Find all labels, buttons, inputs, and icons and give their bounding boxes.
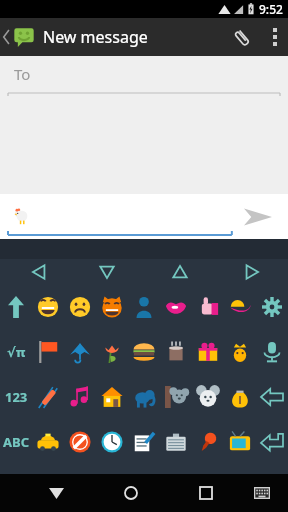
button[interactable]: Koala (160, 374, 192, 419)
button[interactable]: Tulip (96, 329, 128, 374)
button[interactable]: Emoji (10, 205, 34, 229)
button[interactable] (0, 18, 37, 56)
button[interactable]: Send (236, 195, 280, 239)
button[interactable]: TV (224, 419, 256, 464)
staticText: To (14, 64, 31, 84)
button[interactable]: Switch keyboard (242, 474, 282, 512)
staticText: ABC (3, 433, 29, 451)
button[interactable]: Settings (256, 284, 288, 329)
button[interactable]: Memo (128, 419, 160, 464)
staticText: √π (7, 343, 26, 361)
button[interactable]: House (96, 374, 128, 419)
button[interactable]: Money (224, 374, 256, 419)
button[interactable]: Recents (183, 474, 229, 512)
button[interactable]: Flag (32, 329, 64, 374)
button[interactable]: Thumbs up (192, 284, 224, 329)
button[interactable]: Backspace (256, 374, 288, 419)
button[interactable]: Cat (96, 284, 128, 329)
button[interactable]: Grinning (32, 284, 64, 329)
button[interactable]: Microphone (256, 329, 288, 374)
button[interactable]: Symbols (0, 329, 32, 374)
button[interactable]: Numbers (0, 374, 32, 419)
button[interactable]: Hide keyboard (33, 474, 79, 512)
button[interactable]: Umbrella (64, 329, 96, 374)
button[interactable]: Mouse (192, 374, 224, 419)
button[interactable]: Ride (32, 374, 64, 419)
button[interactable]: Gift (192, 329, 224, 374)
button[interactable]: Scroll up (164, 259, 196, 284)
staticText: 123 (5, 388, 28, 406)
button[interactable]: Attach (222, 18, 262, 56)
button[interactable]: Coffee (160, 329, 192, 374)
button[interactable]: Next page (236, 259, 268, 284)
button[interactable]: Scroll down (91, 259, 123, 284)
button[interactable]: Person (128, 284, 160, 329)
staticText: New message (43, 26, 148, 48)
button[interactable]: Home (108, 474, 154, 512)
button[interactable]: Sad (64, 284, 96, 329)
button[interactable]: Previous page (23, 259, 55, 284)
button[interactable]: Elephant (128, 374, 160, 419)
button[interactable]: Music (64, 374, 96, 419)
button[interactable]: Clock (96, 419, 128, 464)
button[interactable]: Pin (192, 419, 224, 464)
button[interactable]: Briefcase (160, 419, 192, 464)
button[interactable]: Crown (224, 329, 256, 374)
button[interactable]: More options (262, 18, 288, 56)
button[interactable]: Shift (0, 284, 32, 329)
button[interactable]: Letters (0, 419, 32, 464)
button[interactable]: No entry (64, 419, 96, 464)
staticText: 9:52 (259, 1, 283, 17)
button[interactable]: Hat (224, 284, 256, 329)
button[interactable]: Lips (160, 284, 192, 329)
button[interactable]: Burger (128, 329, 160, 374)
button[interactable]: Taxi (32, 419, 64, 464)
button[interactable]: Enter (256, 419, 288, 464)
